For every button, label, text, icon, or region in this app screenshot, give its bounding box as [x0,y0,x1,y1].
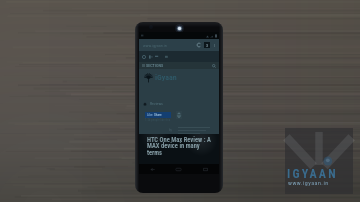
button[interactable]: Back [139,166,165,173]
other: Reload [196,42,202,48]
staticText: HTC One Max Review : A MAX device in man… [147,136,214,157]
button[interactable]: Home [165,166,192,173]
staticText: Share [154,113,162,117]
staticText: Reviews [150,101,163,106]
other: Tabs [204,42,210,48]
staticText: www.igyaan.in [143,43,167,48]
staticText: www.igyaan.in [288,179,329,186]
staticText: Like [147,113,153,117]
staticText: 1.2k people like this. [145,118,171,122]
button[interactable]: www.igyaan.in [139,39,219,51]
button[interactable]: Vote [176,111,182,119]
button[interactable]: SECTIONS [139,62,219,69]
staticText: by [169,128,172,132]
staticText: 3 [206,43,209,48]
button[interactable]: Recent apps [192,166,219,173]
staticText: iGyaan [155,73,177,82]
button[interactable]: Like [145,112,171,118]
other: More options [212,43,217,48]
staticText: IGYAAN [287,167,338,181]
other: Search [212,64,216,68]
staticText: SECTIONS [146,63,164,68]
